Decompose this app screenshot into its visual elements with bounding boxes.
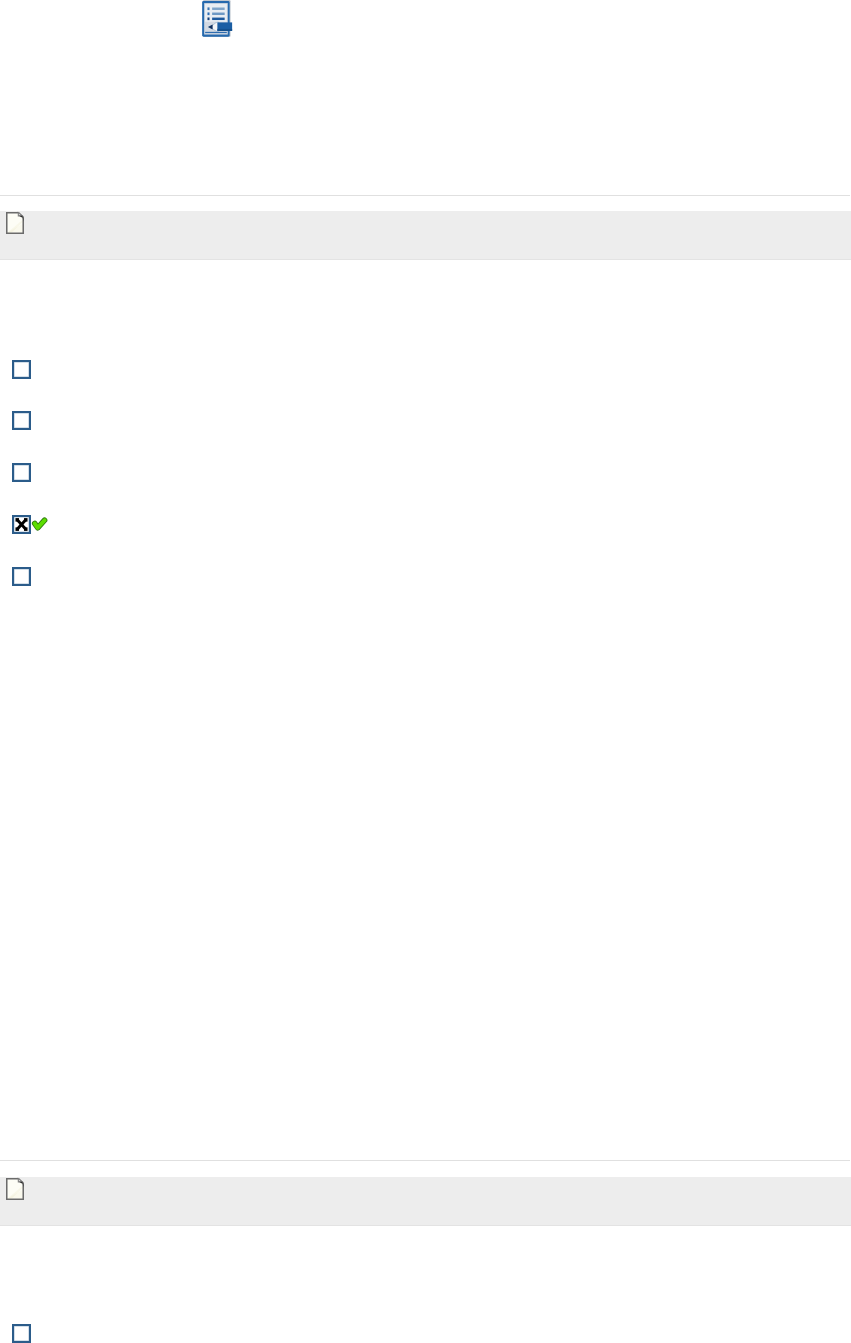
button[interactable]: Section 1 <box>0 211 851 259</box>
button[interactable]: Section 2 <box>0 1177 851 1225</box>
button[interactable]: Option <box>12 1324 831 1343</box>
button[interactable]: Option <box>12 411 831 430</box>
button[interactable]: Edit form <box>200 0 233 37</box>
button[interactable]: Option <box>12 463 831 482</box>
button[interactable]: Selected option <box>12 515 831 534</box>
button[interactable]: Option <box>12 360 831 379</box>
button[interactable]: Option <box>12 567 831 586</box>
